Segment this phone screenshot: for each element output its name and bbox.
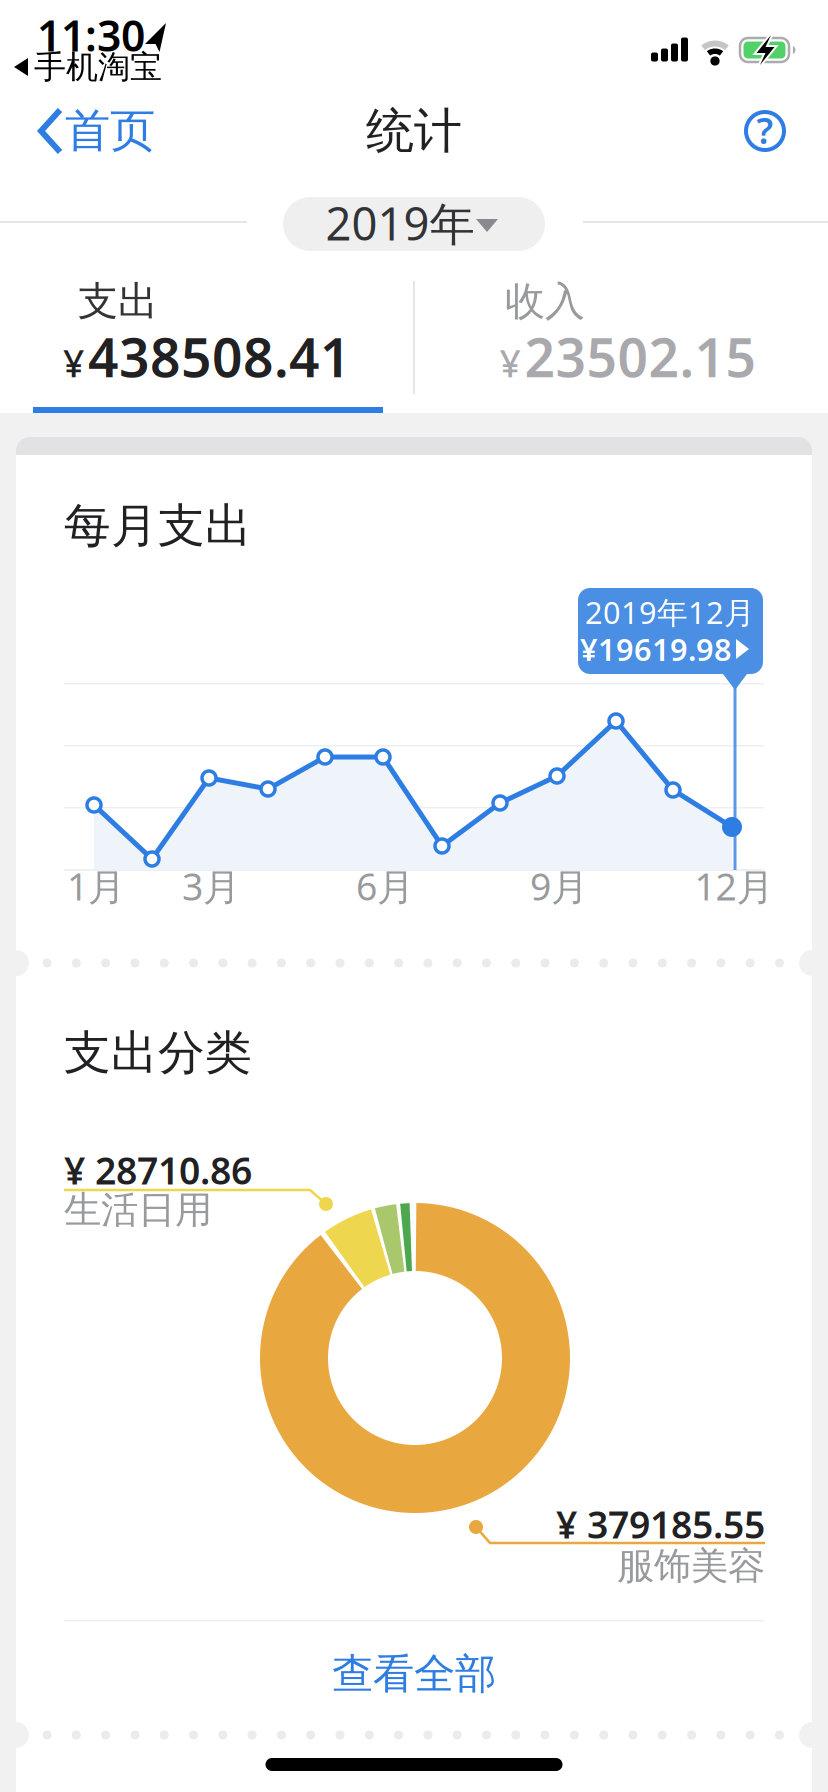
staticText: 9月 (530, 861, 588, 911)
staticText: 12月 (694, 861, 773, 911)
button[interactable]: 收入 (414, 266, 828, 399)
staticText: ¥19619.98 (580, 629, 732, 669)
staticText: ¥ (63, 338, 84, 387)
staticText: 每月支出 (64, 497, 252, 555)
staticText: 6月 (356, 861, 414, 911)
staticText: 2019年12月 (585, 592, 755, 632)
staticText: 查看全部 (332, 1649, 496, 1699)
staticText: ¥ 379185.55 (556, 1499, 765, 1549)
staticText: ¥ (499, 338, 520, 387)
staticText: ? (756, 106, 773, 154)
staticText: 2019年 (325, 193, 474, 253)
staticText: 支出 (78, 277, 158, 326)
staticText: 1月 (67, 861, 125, 911)
button[interactable]: 选择年份 (283, 197, 545, 251)
staticText: 首页 (65, 103, 155, 159)
staticText: 服饰美容 (617, 1543, 765, 1589)
staticText: 收入 (505, 277, 585, 326)
staticText: 11:30 (37, 7, 145, 63)
staticText: 23502.15 (524, 321, 756, 392)
button[interactable]: 查看全部 (264, 1639, 564, 1709)
staticText: 手机淘宝 (34, 47, 162, 87)
button[interactable]: 支出 (0, 266, 414, 399)
staticText: 3月 (182, 861, 240, 911)
staticText: 统计 (366, 101, 462, 160)
staticText: 生活日用 (64, 1187, 212, 1233)
staticText: 支出分类 (64, 1024, 252, 1082)
button[interactable]: 返回首页 (15, 89, 165, 173)
button[interactable]: 2019年12月 支出明细 (578, 588, 763, 690)
button[interactable]: 帮助 (733, 99, 797, 163)
staticText: 438508.41 (88, 321, 351, 392)
staticText: ¥ 28710.86 (64, 1145, 252, 1195)
